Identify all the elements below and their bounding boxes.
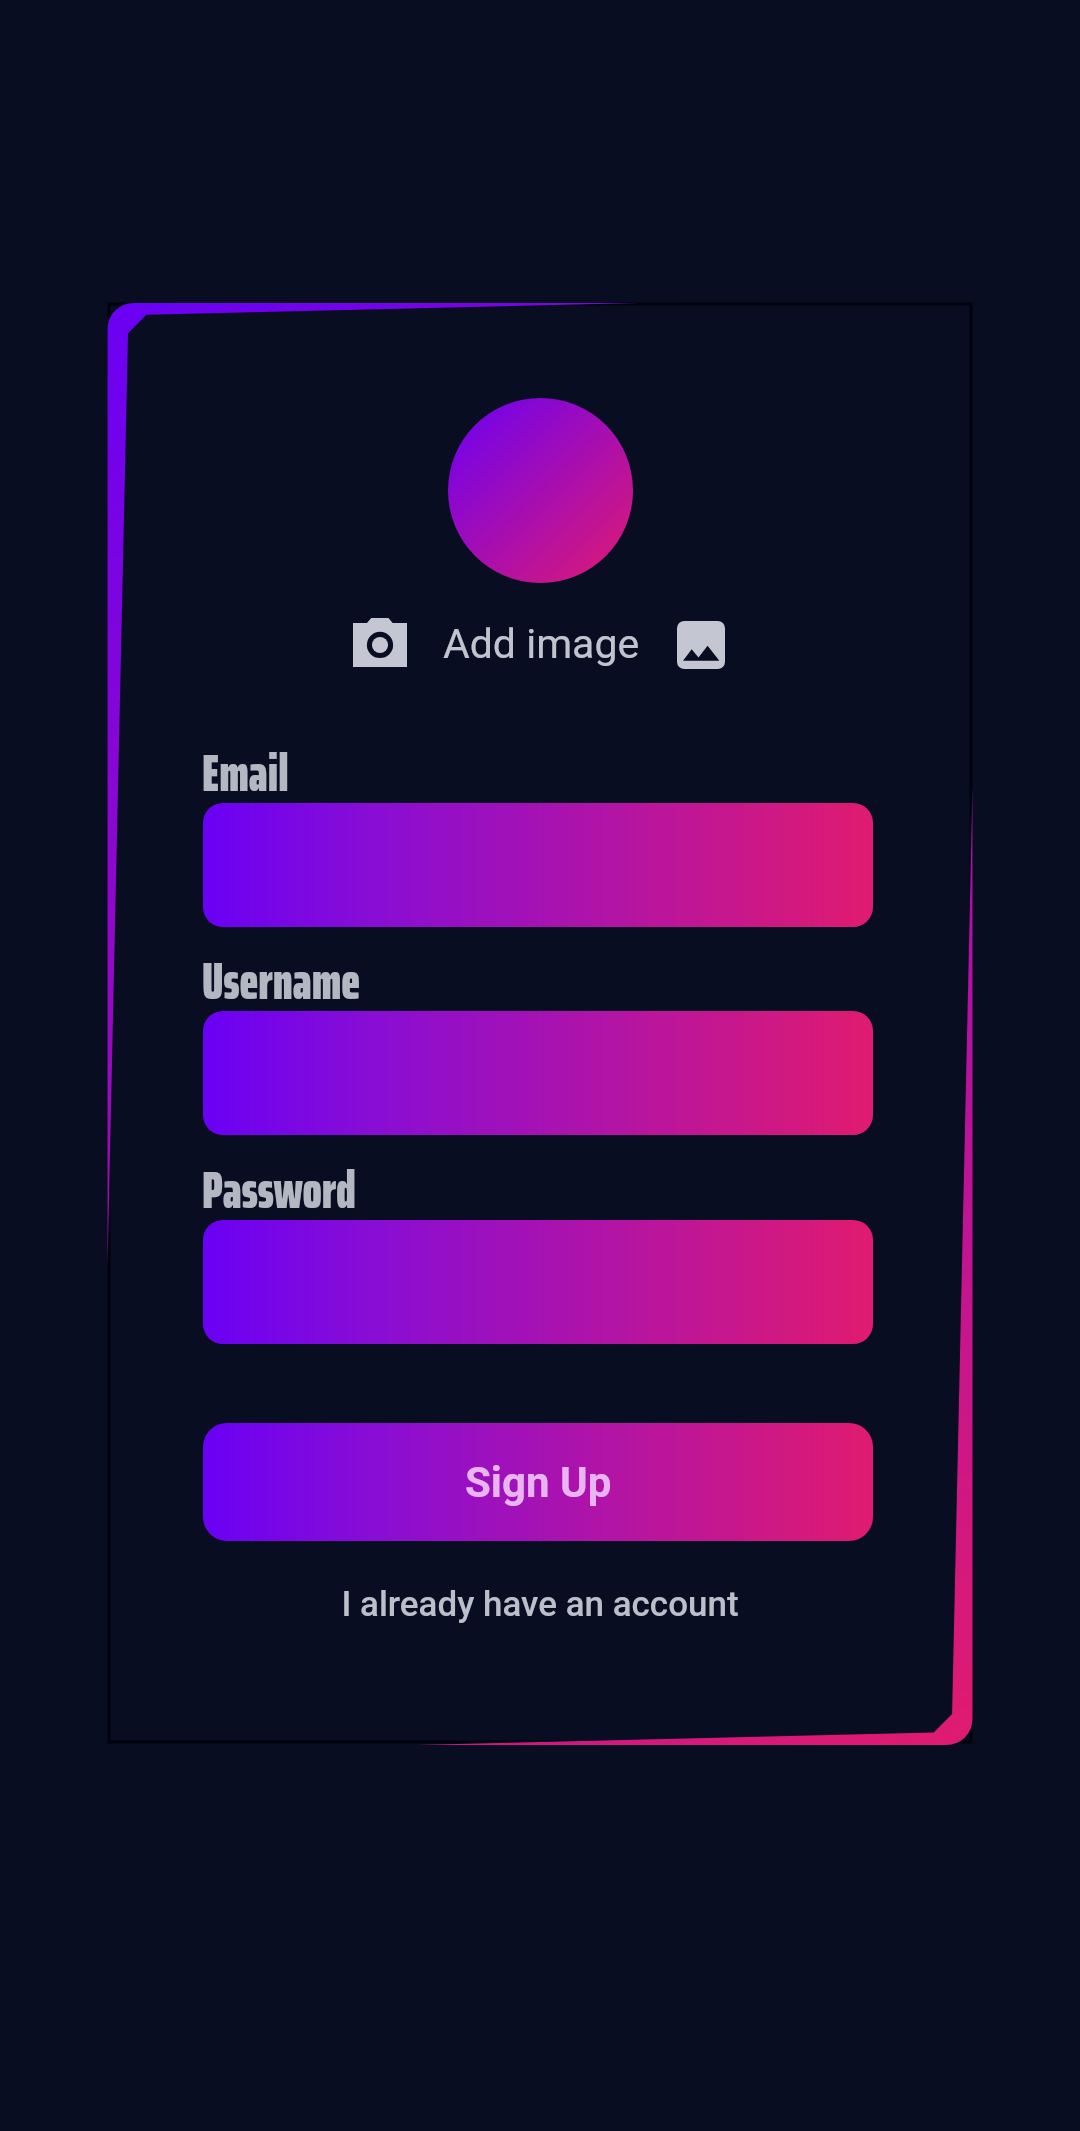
button[interactable]: Take a photo	[353, 618, 407, 667]
button[interactable]: Password	[203, 1220, 873, 1344]
button[interactable]: Add image	[443, 620, 640, 668]
staticText: Password	[202, 1150, 356, 1230]
staticText: Username	[202, 941, 361, 1021]
button[interactable]: Profile picture	[448, 398, 633, 583]
button[interactable]: Username	[203, 1011, 873, 1135]
button[interactable]: Sign Up	[203, 1423, 873, 1541]
button[interactable]: I already have an account	[341, 1584, 739, 1625]
staticText: Email	[202, 733, 289, 813]
button[interactable]: Email	[203, 803, 873, 927]
button[interactable]: Choose from gallery	[677, 621, 725, 669]
staticText: Sign Up	[465, 1458, 612, 1507]
